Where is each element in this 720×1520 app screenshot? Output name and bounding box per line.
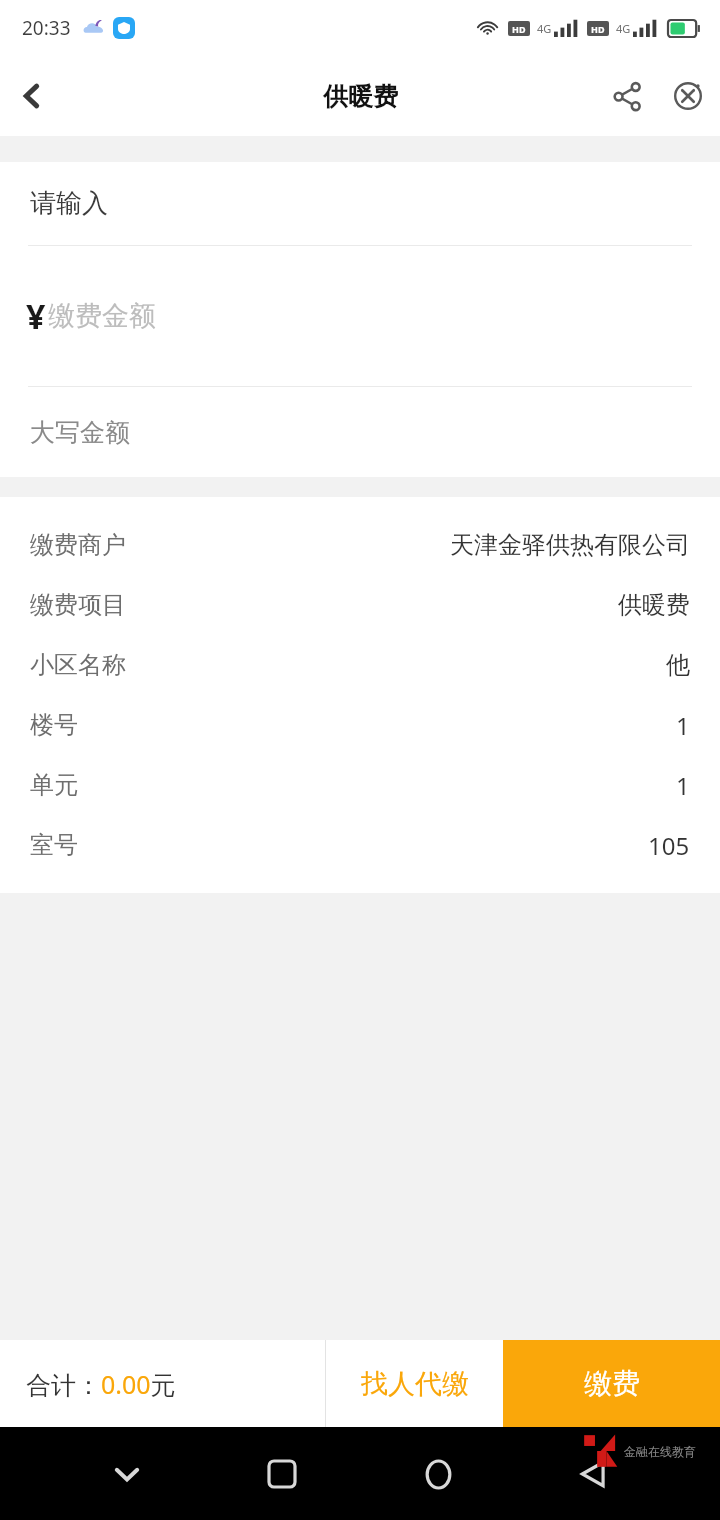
button[interactable]: ¥ bbox=[0, 246, 720, 386]
staticText: 供暖费 bbox=[323, 81, 398, 112]
staticText: 1 bbox=[676, 709, 690, 742]
staticText: 1 bbox=[676, 769, 690, 802]
button[interactable]: Hide keyboard bbox=[98, 1445, 156, 1503]
staticText: 单元 bbox=[30, 770, 78, 800]
staticText: 4G bbox=[616, 21, 631, 36]
staticText: 天津金驿供热有限公司 bbox=[450, 530, 690, 560]
staticText: 合计：0.00元 bbox=[26, 1367, 176, 1401]
staticText: 找人代缴 bbox=[361, 1367, 469, 1401]
button[interactable]: Close bbox=[656, 64, 720, 128]
staticText: 105 bbox=[648, 829, 690, 862]
button[interactable]: 缴费 bbox=[503, 1340, 720, 1427]
staticText: 缴费金额 bbox=[48, 299, 156, 333]
button[interactable]: 请输入 bbox=[0, 162, 720, 245]
button[interactable]: Back bbox=[0, 64, 64, 128]
staticText: HD bbox=[591, 23, 605, 35]
staticText: 20:33 bbox=[22, 15, 71, 41]
staticText: 楼号 bbox=[30, 710, 78, 740]
button[interactable]: 找人代缴 bbox=[326, 1340, 503, 1427]
staticText: HD bbox=[512, 23, 526, 35]
staticText: 大写金额 bbox=[30, 417, 130, 448]
button[interactable]: Share bbox=[598, 67, 656, 125]
staticText: 缴费 bbox=[584, 1366, 640, 1401]
staticText: 缴费商户 bbox=[30, 530, 126, 560]
staticText: 4G bbox=[537, 21, 552, 36]
staticText: 室号 bbox=[30, 830, 78, 860]
staticText: ¥ bbox=[26, 293, 46, 339]
staticText: 供暖费 bbox=[618, 590, 690, 620]
staticText: 请输入 bbox=[30, 187, 108, 220]
staticText: 缴费项目 bbox=[30, 590, 126, 620]
button[interactable]: Back bbox=[564, 1445, 622, 1503]
staticText: 小区名称 bbox=[30, 650, 126, 680]
staticText: 金融在线教育 bbox=[624, 1444, 696, 1459]
button[interactable]: Recents bbox=[253, 1445, 311, 1503]
button[interactable]: Home bbox=[409, 1445, 467, 1503]
staticText: 他 bbox=[666, 650, 690, 680]
